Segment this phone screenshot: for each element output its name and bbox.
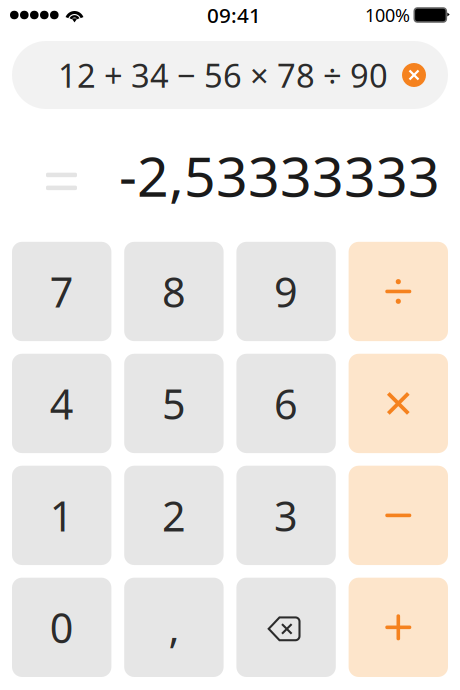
staticText: 4: [50, 375, 74, 432]
button[interactable]: Subtract: [349, 466, 448, 565]
staticText: 2: [162, 487, 186, 543]
button[interactable]: Add: [349, 578, 448, 677]
staticText: 3: [274, 487, 298, 543]
staticText: 12 + 34 − 56 × 78 ÷ 90: [58, 53, 388, 97]
button[interactable]: 6: [236, 354, 336, 453]
button[interactable]: 0: [12, 578, 111, 677]
button[interactable]: Divide: [349, 242, 448, 341]
button[interactable]: 3: [236, 466, 336, 565]
button[interactable]: 1: [12, 466, 111, 565]
button[interactable]: Backspace: [236, 578, 336, 677]
staticText: 09:41: [207, 1, 261, 29]
staticText: ,: [168, 599, 179, 655]
button[interactable]: 9: [236, 242, 336, 341]
staticText: 0: [50, 599, 74, 655]
button[interactable]: 5: [124, 354, 224, 453]
staticText: -2,53333333: [119, 138, 440, 213]
staticText: 8: [162, 263, 186, 320]
button[interactable]: 2: [124, 466, 224, 565]
button[interactable]: ,: [124, 578, 224, 677]
button[interactable]: 7: [12, 242, 111, 341]
button[interactable]: 8: [124, 242, 224, 341]
staticText: 6: [274, 375, 298, 432]
staticText: 1: [50, 487, 74, 543]
staticText: 5: [162, 375, 186, 432]
button[interactable]: Multiply: [349, 354, 448, 453]
staticText: 100%: [365, 3, 410, 27]
staticText: 9: [274, 263, 298, 320]
button[interactable]: Clear: [402, 63, 426, 87]
button[interactable]: 4: [12, 354, 111, 453]
staticText: 7: [50, 263, 74, 320]
